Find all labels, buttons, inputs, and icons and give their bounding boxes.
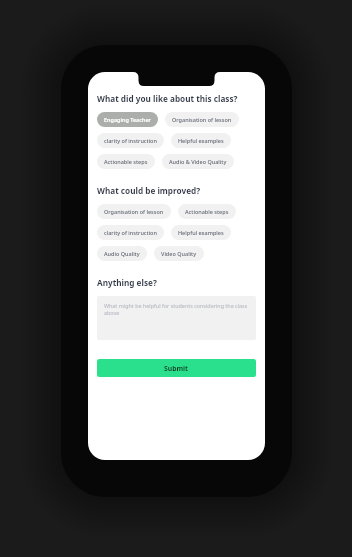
button[interactable]: Helpful examples [171, 225, 231, 240]
staticText: Audio Quality [104, 250, 140, 257]
staticText: clarity of instruction [104, 137, 157, 144]
button[interactable]: Audio & Video Quality [162, 154, 234, 169]
staticText: What might be helpful for students consi… [104, 302, 249, 317]
staticText: clarity of instruction [104, 229, 157, 236]
staticText: What could be improved? [97, 185, 201, 196]
staticText: Actionable steps [104, 158, 148, 165]
button[interactable]: Audio Quality [97, 246, 147, 261]
staticText: Audio & Video Quality [169, 158, 227, 165]
button[interactable]: clarity of instruction [97, 133, 164, 148]
button[interactable]: Engaging Teacher [97, 112, 158, 127]
button[interactable]: Helpful examples [171, 133, 231, 148]
button[interactable]: Actionable steps [97, 154, 155, 169]
staticText: Anything else? [97, 277, 157, 288]
button[interactable]: Actionable steps [178, 204, 236, 219]
button[interactable]: Submit [97, 359, 256, 377]
button[interactable]: Organisation of lesson [97, 204, 171, 219]
staticText: Submit [164, 364, 189, 373]
staticText: Helpful examples [178, 137, 224, 144]
button[interactable]: clarity of instruction [97, 225, 164, 240]
staticText: What did you like about this class? [97, 93, 238, 104]
staticText: Helpful examples [178, 229, 224, 236]
button[interactable]: Organisation of lesson [165, 112, 239, 127]
button[interactable]: Additional comments [97, 296, 256, 340]
staticText: Engaging Teacher [104, 116, 151, 123]
button[interactable]: Video Quality [154, 246, 204, 261]
staticText: Actionable steps [185, 208, 229, 215]
staticText: Organisation of lesson [172, 116, 232, 123]
staticText: Organisation of lesson [104, 208, 164, 215]
staticText: Video Quality [161, 250, 197, 257]
